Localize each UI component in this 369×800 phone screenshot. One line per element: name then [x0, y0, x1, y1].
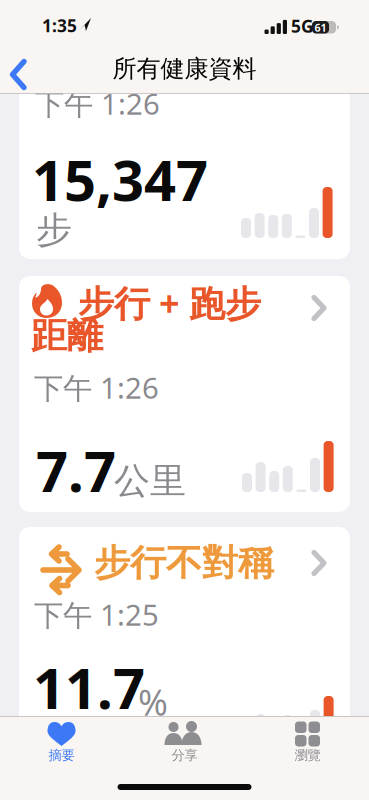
- staticText: 5G: [291, 14, 314, 37]
- staticText: 距離: [31, 314, 103, 358]
- button[interactable]: [0, 0, 369, 800]
- button[interactable]: 下午 1:26: [0, 0, 331, 190]
- staticText: 公里: [114, 459, 186, 503]
- staticText: 15,347: [32, 142, 208, 216]
- staticText: 下午 1:26: [34, 368, 159, 407]
- staticText: 61: [314, 20, 326, 35]
- staticText: 摘要: [48, 747, 74, 763]
- staticText: 下午 1:25: [34, 595, 159, 634]
- staticText: 步行不對稱: [94, 541, 274, 585]
- staticText: 瀏覽: [294, 747, 320, 763]
- button[interactable]: 步行 + 跑步: [0, 0, 369, 800]
- staticText: %: [138, 678, 168, 726]
- staticText: 7.7: [36, 433, 116, 507]
- staticText: 分享: [171, 747, 197, 763]
- staticText: 1:35: [42, 14, 77, 37]
- button[interactable]: 步行不對稱: [0, 0, 369, 800]
- staticText: 步行 + 跑步: [78, 279, 261, 327]
- staticText: 步: [36, 208, 72, 252]
- button[interactable]: 分享: [0, 0, 369, 800]
- staticText: 下午 1:26: [35, 84, 160, 123]
- button[interactable]: 摘要: [0, 0, 369, 800]
- staticText: 11.7: [33, 650, 145, 724]
- staticText: 所有健康資料: [112, 54, 256, 83]
